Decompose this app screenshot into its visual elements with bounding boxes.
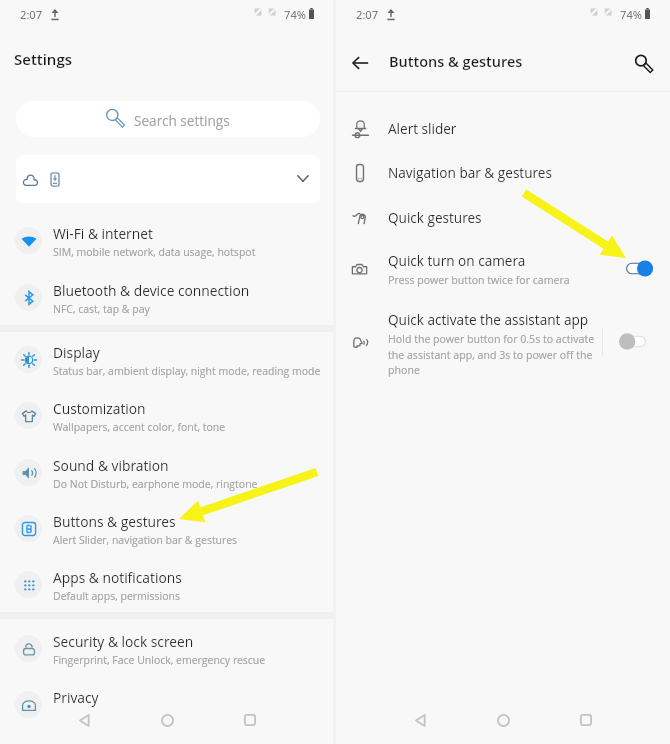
staticText: Sound & vibration	[53, 456, 169, 475]
button[interactable]: Sound & vibration	[0, 441, 334, 491]
button[interactable]: Search settings	[16, 101, 320, 137]
staticText: Press power button twice for camera	[388, 273, 570, 287]
staticText: Wi-Fi & internet	[53, 224, 153, 243]
button[interactable]: Turn off	[626, 260, 653, 277]
button[interactable]: Bluetooth & device connection	[0, 266, 334, 316]
button[interactable]: Buttons & gestures	[0, 497, 334, 547]
button[interactable]: Navigation bar & gestures	[336, 152, 670, 192]
staticText: Wallpapers, accent color, font, tone	[53, 420, 226, 434]
button[interactable]: Privacy	[0, 673, 334, 723]
staticText: SIM, mobile network, data usage, hotspot	[53, 245, 256, 259]
staticText: Status bar, ambient display, night mode,…	[53, 364, 321, 378]
button[interactable]: Security & lock screen	[0, 617, 334, 667]
button[interactable]: Quick activate the assistant app	[336, 300, 670, 380]
button[interactable]: Quick turn on camera	[336, 238, 670, 284]
button[interactable]: Back	[402, 702, 438, 738]
button[interactable]: Turn on	[619, 333, 646, 350]
staticText: Alert Slider, navigation bar & gestures	[53, 533, 238, 547]
staticText: Do Not Disturb, earphone mode, ringtone	[53, 477, 258, 491]
staticText: NFC, cast, tap & pay	[53, 302, 150, 316]
button[interactable]: Customization	[0, 384, 334, 434]
staticText: Quick turn on camera	[388, 251, 526, 270]
button[interactable]	[16, 155, 320, 203]
button[interactable]: Back	[66, 702, 102, 738]
staticText: 74%	[284, 7, 307, 22]
button[interactable]: Back	[342, 45, 378, 81]
staticText: Hold the power button for 0.5s to activa…	[388, 332, 595, 377]
button[interactable]: Recents	[568, 702, 604, 738]
button[interactable]: Display	[0, 328, 334, 378]
button[interactable]: Quick gestures	[336, 197, 670, 237]
staticText: 2:07	[356, 7, 379, 22]
staticText: Settings	[14, 49, 73, 69]
staticText: Apps & notifications	[53, 568, 182, 587]
staticText: Privacy	[53, 688, 99, 707]
button[interactable]: Home	[485, 702, 521, 738]
button[interactable]: Apps & notifications	[0, 553, 334, 603]
staticText: Buttons & gestures	[389, 52, 523, 72]
button[interactable]: Search	[625, 45, 661, 81]
staticText: Buttons & gestures	[53, 512, 176, 531]
staticText: Security & lock screen	[53, 632, 194, 651]
staticText: Display	[53, 343, 100, 362]
button[interactable]: Alert slider	[336, 108, 670, 148]
staticText: Quick gestures	[388, 208, 482, 227]
button[interactable]: Wi-Fi & internet	[0, 209, 334, 259]
staticText: Default apps, permissions	[53, 589, 180, 603]
staticText: Fingerprint, Face Unlock, emergency resc…	[53, 653, 266, 667]
staticText: 74%	[620, 7, 643, 22]
staticText: Navigation bar & gestures	[388, 163, 552, 182]
button[interactable]: Home	[149, 702, 185, 738]
staticText: 2:07	[20, 7, 43, 22]
staticText: Quick activate the assistant app	[388, 310, 589, 329]
staticText: Alert slider	[388, 119, 457, 138]
staticText: Customization	[53, 399, 146, 418]
staticText: Search settings	[134, 111, 230, 130]
button[interactable]: Recents	[232, 702, 268, 738]
staticText: Bluetooth & device connection	[53, 281, 250, 300]
